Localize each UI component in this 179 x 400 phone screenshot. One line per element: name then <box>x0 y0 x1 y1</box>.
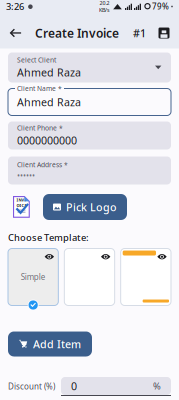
button[interactable]: Simple <box>8 248 58 305</box>
staticText: 0 <box>71 379 77 393</box>
staticText: Choose Template: <box>8 231 89 244</box>
button[interactable]: Save <box>155 20 173 45</box>
staticText: 0000000000 <box>17 133 77 147</box>
staticText: Add Item <box>33 337 81 351</box>
button[interactable]: 0 <box>61 377 171 396</box>
button[interactable]: Pick Logo <box>43 194 127 220</box>
staticText: Discount (%) <box>8 381 55 392</box>
button[interactable]: Back <box>5 20 26 45</box>
staticText: •••••• <box>17 170 35 181</box>
button[interactable] <box>121 248 171 305</box>
staticText: 79% <box>152 1 169 12</box>
button[interactable] <box>64 248 115 305</box>
staticText: Select Client <box>17 55 56 64</box>
button[interactable]: Add Item <box>8 331 92 356</box>
button[interactable]: Ahmed Raza <box>8 84 171 115</box>
staticText: Pick Logo <box>66 200 117 214</box>
staticText: Client Phone * <box>17 123 63 132</box>
staticText: INVOICE <box>16 197 26 208</box>
button[interactable]: Client Address * <box>8 156 171 184</box>
staticText: Ahmed Raza <box>17 95 81 109</box>
staticText: KB/s <box>99 6 110 14</box>
staticText: % <box>153 380 161 392</box>
staticText: Simple <box>21 272 46 282</box>
staticText: #1 <box>133 26 146 40</box>
button[interactable]: Select Client <box>8 52 171 82</box>
staticText: Create Invoice <box>35 25 119 41</box>
staticText: Client Address * <box>17 160 68 169</box>
staticText: Client Name * <box>17 84 62 93</box>
staticText: Ahmed Raza <box>17 65 81 79</box>
staticText: 20.2 <box>99 0 109 6</box>
staticText: 3:26 <box>6 0 24 13</box>
button[interactable]: Client Phone * <box>8 121 171 149</box>
